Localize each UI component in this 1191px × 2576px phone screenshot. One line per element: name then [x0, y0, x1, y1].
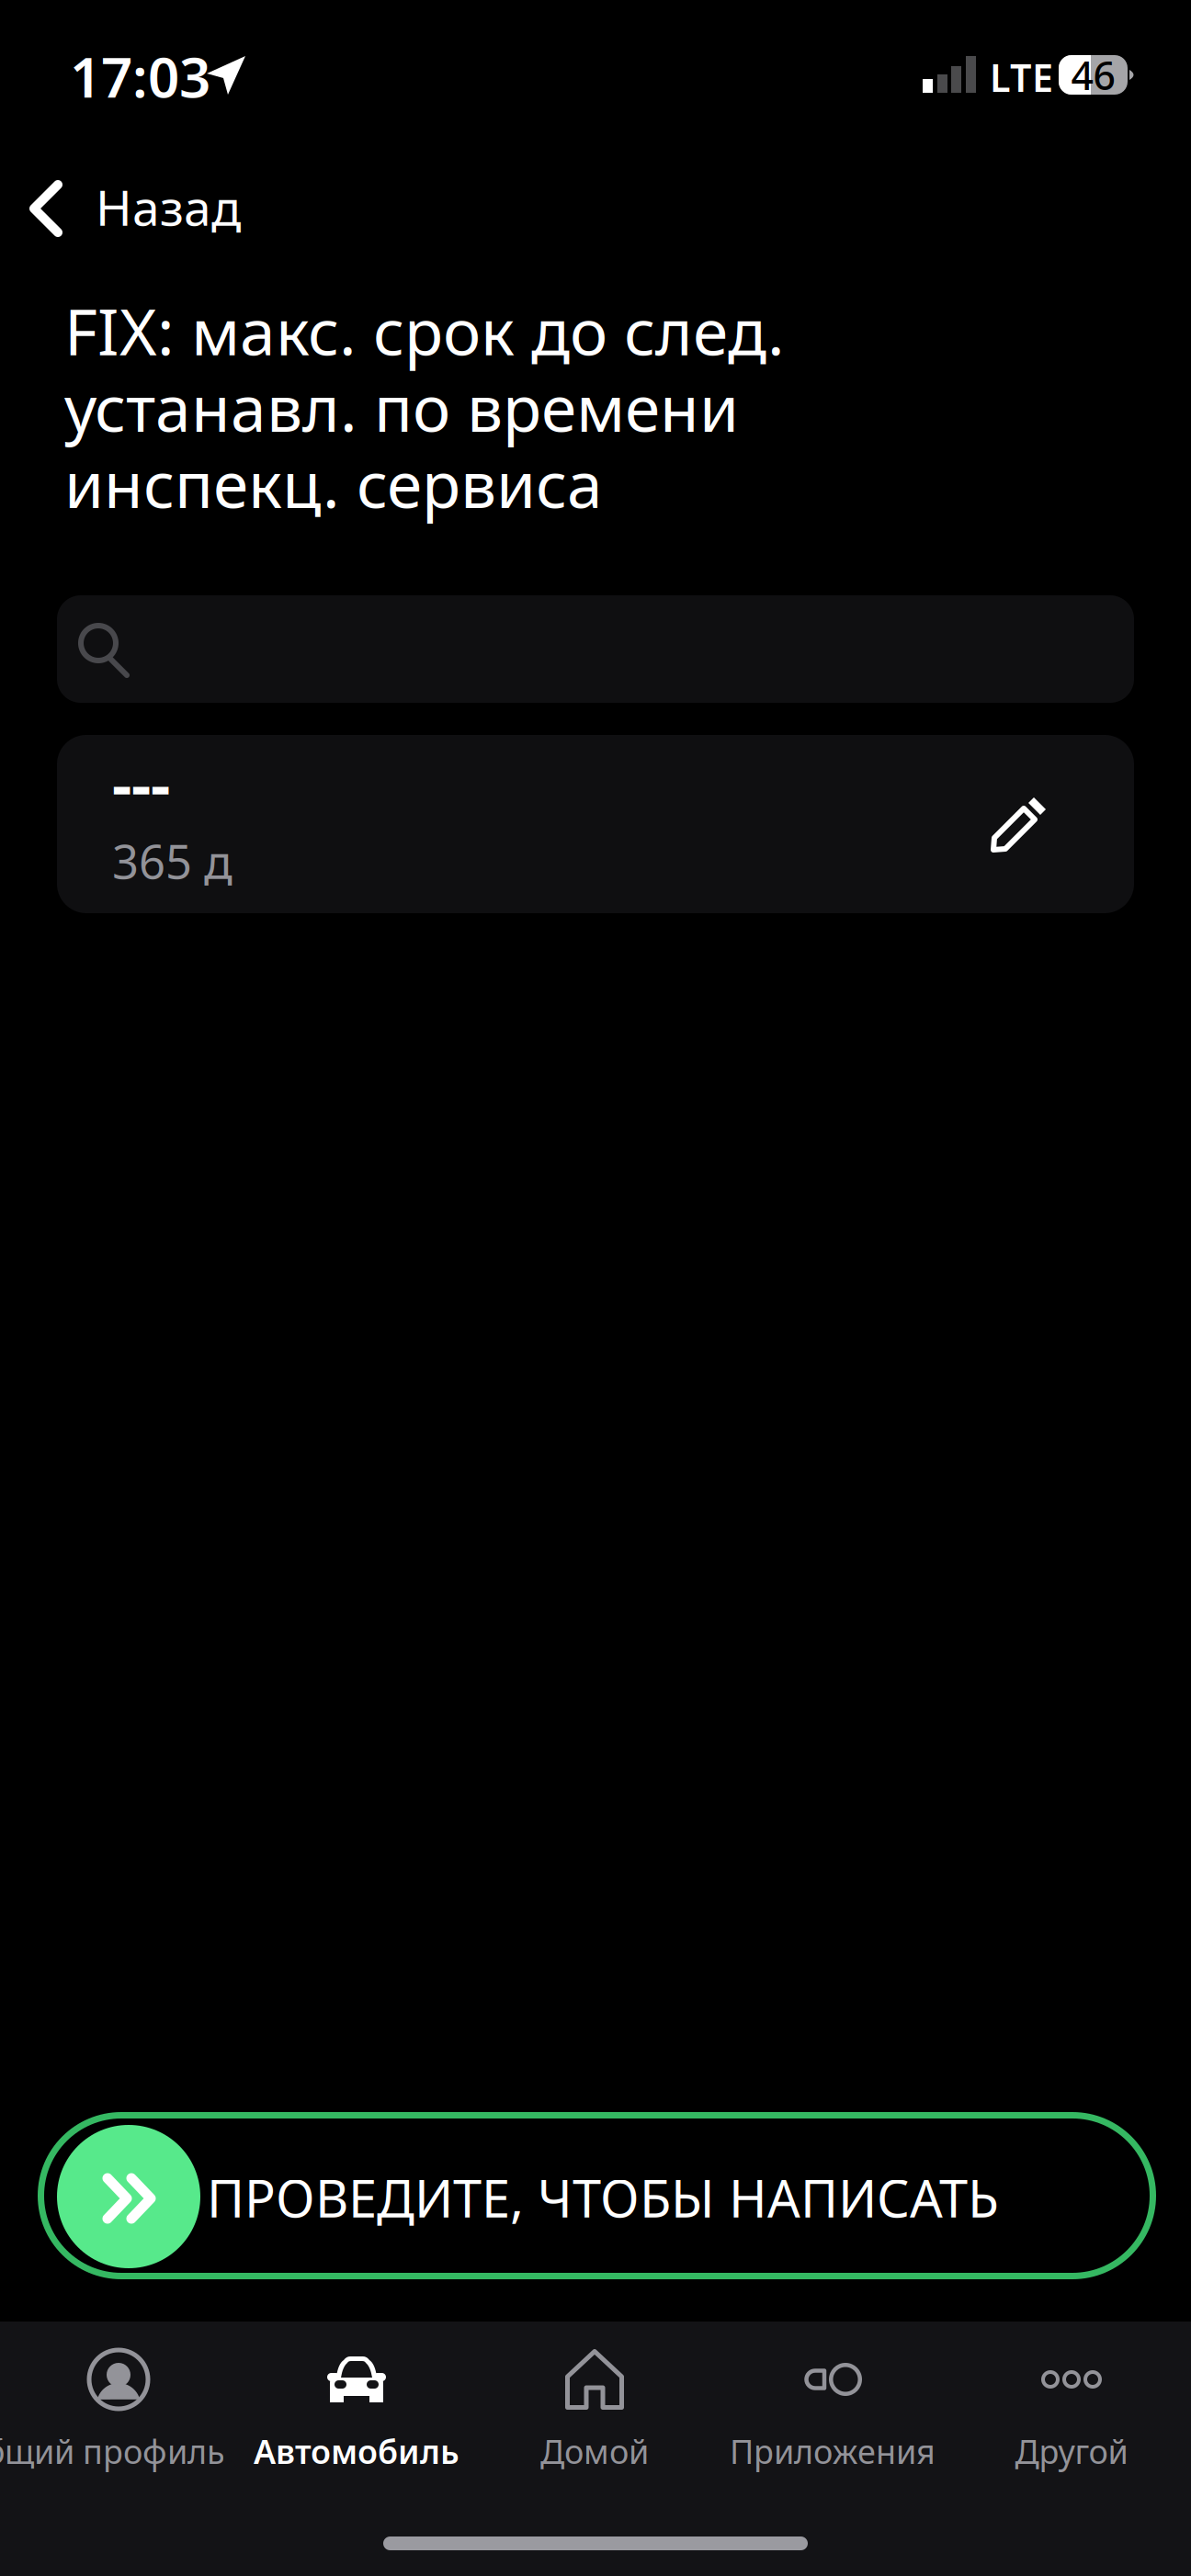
staticText: ПРОВЕДИТЕ, ЧТОБЫ НАПИСАТЬ	[207, 2163, 999, 2232]
staticText: Назад	[96, 174, 241, 239]
staticText: 17:03	[70, 40, 210, 113]
button[interactable]: Автомобиль	[238, 2340, 475, 2478]
staticText: Домой	[540, 2429, 649, 2473]
staticText: Общий профиль	[0, 2429, 225, 2473]
button[interactable]: ПРОВЕДИТЕ, ЧТОБЫ НАПИСАТЬ	[38, 2112, 1156, 2279]
staticText: FIX: макс. срок до след. устанавл. по вр…	[64, 288, 785, 526]
button[interactable]: Приложения	[714, 2340, 951, 2478]
button[interactable]: Редактировать	[971, 776, 1067, 872]
button[interactable]: Назад	[0, 156, 276, 257]
button[interactable]: Другой	[952, 2340, 1191, 2478]
staticText: Другой	[1015, 2429, 1128, 2473]
button[interactable]: Домой	[476, 2340, 713, 2478]
button[interactable]: Поиск	[57, 595, 1134, 703]
button[interactable]: Общий профиль	[0, 2340, 237, 2478]
staticText: 46	[1071, 49, 1115, 101]
staticText: Автомобиль	[254, 2429, 459, 2473]
staticText: ---	[112, 743, 170, 824]
staticText: Приложения	[730, 2429, 936, 2473]
staticText: 365 д	[112, 830, 233, 892]
button[interactable]: ---	[57, 735, 1134, 913]
staticText: LTE	[990, 52, 1053, 102]
